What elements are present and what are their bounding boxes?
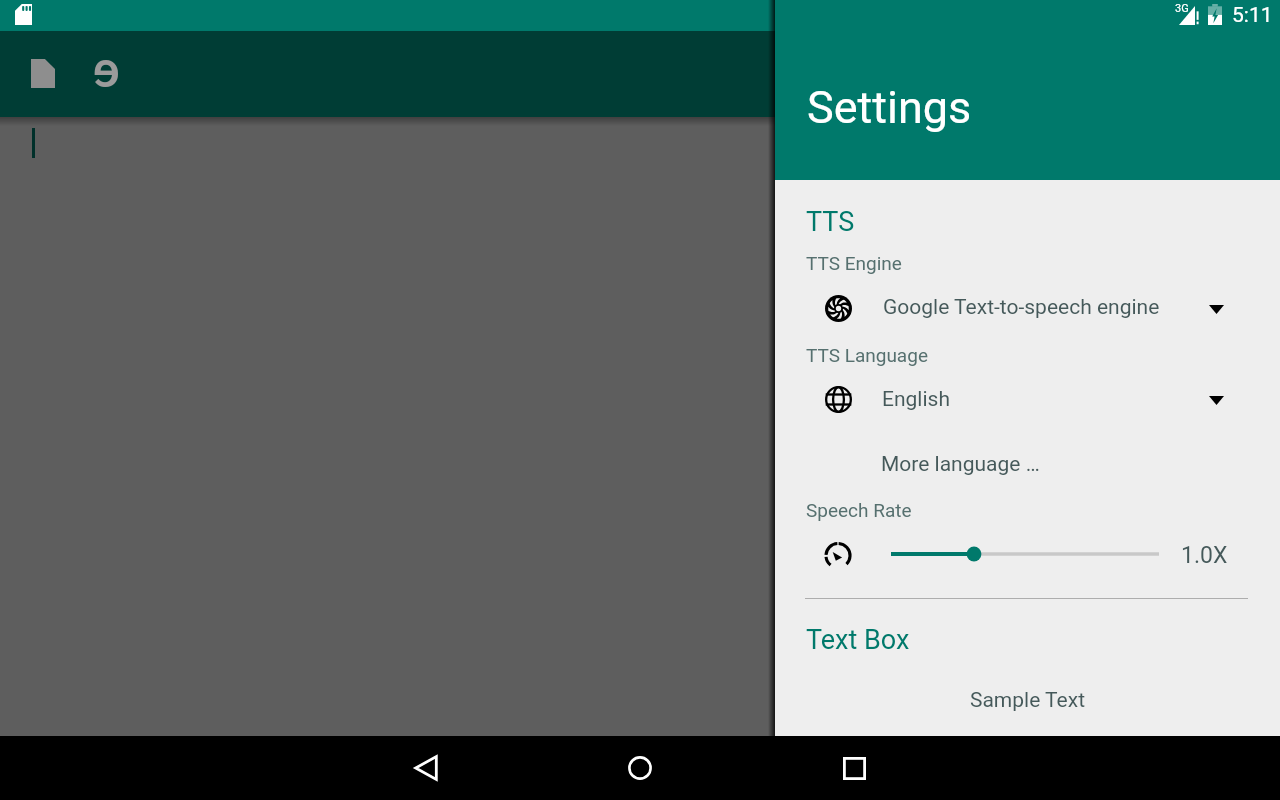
button[interactable]	[881, 544, 1169, 564]
button[interactable]	[775, 379, 1280, 421]
staticText: 1.0X	[1181, 542, 1228, 569]
button[interactable]: Recent apps	[834, 748, 874, 788]
staticText: Text Box	[806, 624, 910, 656]
staticText: Google Text-to-speech engine	[883, 295, 1160, 320]
staticText: English	[882, 387, 950, 412]
staticText: 5:11	[1232, 3, 1273, 28]
staticText: TTS Language	[806, 344, 928, 366]
staticText: Sample Text	[775, 688, 1280, 713]
button[interactable]: Home	[620, 748, 660, 788]
staticText: 3G	[1175, 2, 1189, 15]
button[interactable]	[775, 288, 1280, 330]
staticText: TTS Engine	[806, 252, 902, 274]
button[interactable]: Editor	[87, 41, 125, 89]
staticText: e	[93, 41, 120, 89]
staticText: Speech Rate	[806, 499, 912, 521]
button[interactable]: Back	[406, 748, 446, 788]
staticText: More language …	[881, 452, 1040, 477]
button[interactable]: More language …	[879, 447, 1042, 482]
staticText: Settings	[807, 81, 972, 134]
staticText: TTS	[806, 206, 855, 238]
